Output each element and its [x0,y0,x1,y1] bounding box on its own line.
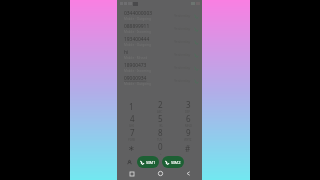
staticText: 0344000003 [124,10,152,17]
button[interactable]: 4 [117,114,146,128]
button[interactable]: 193400444 [117,35,202,48]
staticText: 193400444 [124,36,150,43]
staticText: Mobile · Outgoing [124,82,151,86]
staticText: Mobile · Missed [124,56,148,60]
staticText: 4 [130,113,135,124]
button[interactable]: Home [146,167,174,180]
staticText: 18900473 [124,62,147,69]
staticText: Mobile · Outgoing [124,17,151,21]
staticText: 8 [158,127,163,138]
staticText: 2 [158,99,163,110]
button[interactable]: # [174,142,202,156]
button[interactable]: Recents [117,167,146,180]
staticText: Mobile · Incoming [124,30,151,34]
button[interactable]: Call 0344000003 [193,13,199,19]
button[interactable]: 0344000003 [117,9,202,22]
staticText: 5 [158,113,163,124]
staticText: 6 [186,113,191,124]
button[interactable]: Call hi [193,52,199,58]
button[interactable]: 7 [117,128,146,142]
button[interactable]: 9 [174,128,202,142]
button[interactable]: Call 193400444 [193,39,199,45]
staticText: 0 [158,141,163,152]
staticText: # [185,143,191,154]
staticText: ∗ [128,144,135,153]
button[interactable]: SIM1 [137,156,159,168]
button[interactable]: Add contact [125,158,133,166]
staticText: 9 [186,127,191,138]
staticText: SIM2 [171,160,181,165]
staticText: SIM1 [146,160,156,165]
button[interactable]: Call 088899911 [193,26,199,32]
staticText: 3 [186,99,191,110]
staticText: 09000934 [124,75,147,82]
staticText: 7 [130,127,135,138]
button[interactable]: 2 [146,100,174,114]
button[interactable]: 5 [146,114,174,128]
button[interactable]: 18900473 [117,61,202,74]
staticText: Mobile · Outgoing [124,43,151,47]
button[interactable]: 1 [117,100,146,114]
button[interactable]: 09000934 [117,74,202,87]
button[interactable]: 6 [174,114,202,128]
button[interactable]: 0 [146,142,174,156]
staticText: 1 [129,101,134,112]
button[interactable]: ∗ [117,142,146,156]
staticText: Mobile · Incoming [124,69,151,73]
button[interactable]: Call 18900473 [193,65,199,71]
button[interactable]: Call 09000934 [193,78,199,84]
button[interactable]: SIM2 [162,156,184,168]
staticText: hi [124,49,129,56]
button[interactable]: 8 [146,128,174,142]
button[interactable]: Back [174,167,202,180]
button[interactable]: 088899911 [117,22,202,35]
staticText: 088899911 [124,23,150,30]
button[interactable]: 3 [174,100,202,114]
